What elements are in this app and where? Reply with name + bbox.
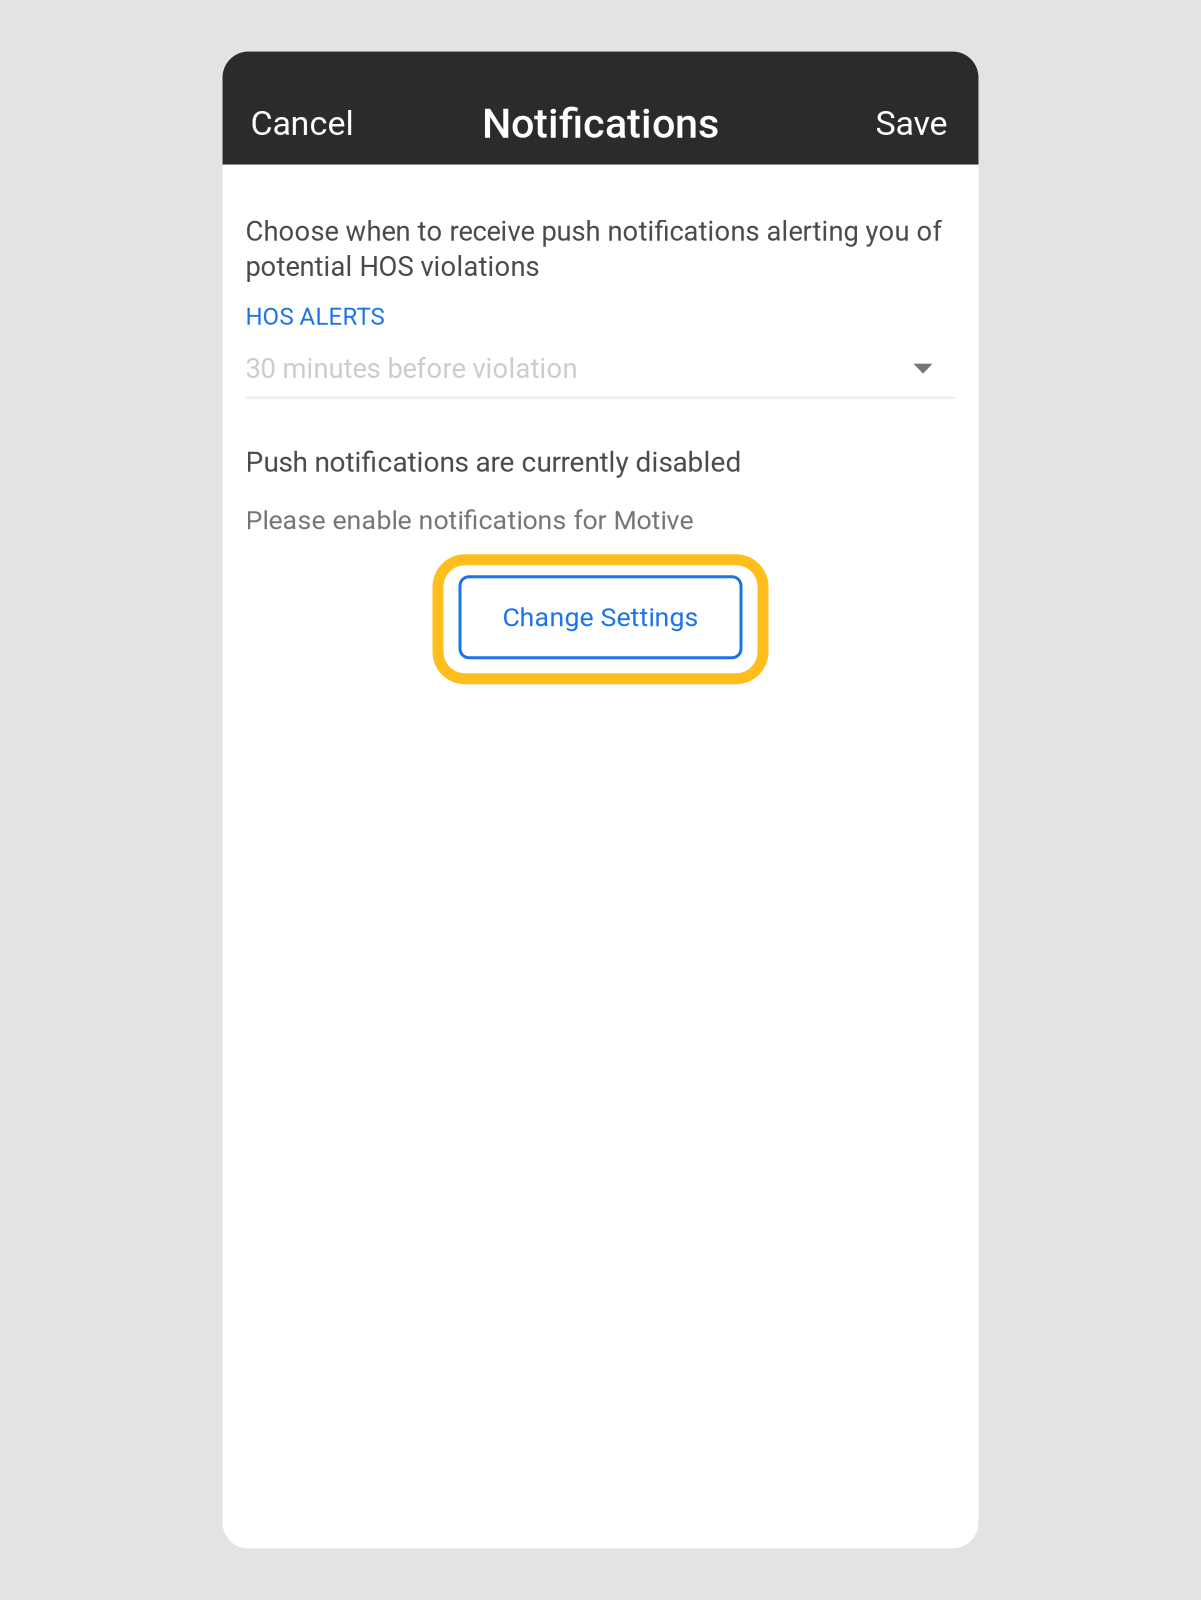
staticText: HOS ALERTS — [245, 303, 384, 331]
staticText: potential HOS violations — [245, 250, 539, 282]
button[interactable]: Cancel — [234, 92, 369, 155]
staticText: Please enable notifications for Motive — [245, 504, 693, 536]
button[interactable]: Change Settings — [438, 560, 763, 679]
staticText: Choose when to receive push notification… — [245, 215, 942, 247]
staticText: Change Settings — [502, 602, 698, 633]
staticText: Push notifications are currently disable… — [245, 446, 741, 478]
staticText: 30 minutes before violation — [245, 353, 577, 385]
button[interactable]: Save — [859, 92, 963, 155]
staticText: Cancel — [250, 104, 353, 143]
button[interactable]: HOS alert timing — [245, 331, 955, 393]
staticText: Notifications — [482, 99, 719, 148]
staticText: Save — [875, 104, 947, 143]
